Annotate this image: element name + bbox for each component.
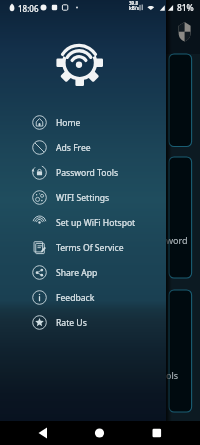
staticText: WIFI Settings — [56, 192, 110, 204]
button[interactable]: Terms Of Service — [0, 235, 166, 260]
staticText: 18:06 — [18, 3, 39, 14]
button[interactable]: Feedback — [0, 285, 166, 310]
button[interactable]: Home — [0, 110, 166, 135]
button[interactable]: Ads Free — [0, 135, 166, 160]
staticText: 81% — [177, 2, 194, 13]
staticText: 39.8 — [129, 0, 138, 6]
staticText: Feedback — [56, 292, 95, 304]
button[interactable]: Password Tools — [0, 160, 166, 185]
staticText: Rate Us — [56, 317, 87, 329]
other: System navigation — [0, 421, 200, 445]
button[interactable]: WIFI Settings — [0, 185, 166, 210]
staticText: Share App — [56, 267, 98, 279]
button[interactable]: Rate Us — [0, 310, 166, 335]
staticText: Password Tools — [56, 167, 119, 179]
staticText: Ads Free — [56, 142, 91, 154]
staticText: ols — [166, 369, 179, 381]
staticText: Home — [56, 117, 81, 129]
staticText: Terms Of Service — [56, 242, 124, 254]
button[interactable]: Set up WiFi Hotspot — [0, 210, 166, 235]
staticText: Set up WiFi Hotspot — [56, 217, 136, 229]
staticText: kB/s — [129, 5, 139, 11]
button[interactable]: Share App — [0, 260, 166, 285]
staticText: word — [166, 234, 188, 246]
